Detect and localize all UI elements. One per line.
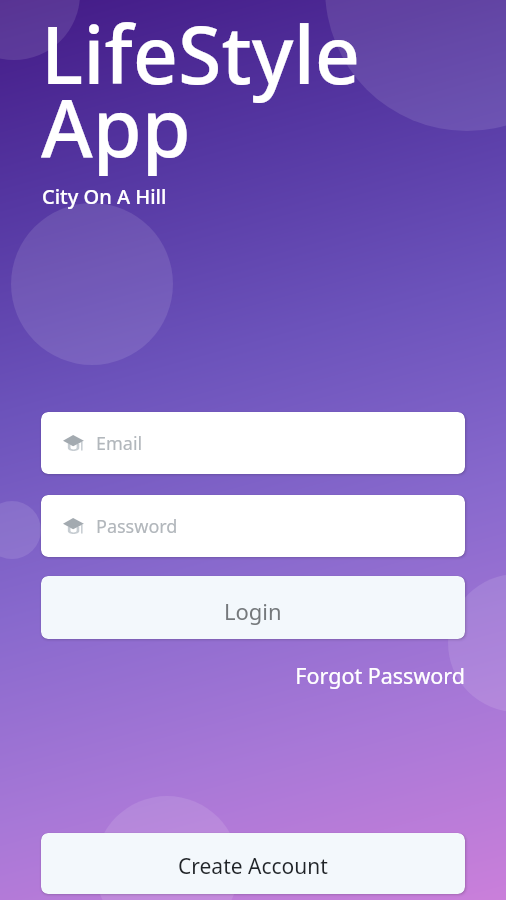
staticText: City On A Hill <box>42 183 167 210</box>
staticText: Password <box>96 514 178 539</box>
button[interactable]: Create Account <box>41 833 465 894</box>
button[interactable]: Password <box>41 495 465 557</box>
staticText: LifeStyle App <box>41 0 361 180</box>
staticText: Forgot Password <box>295 661 465 690</box>
button[interactable]: Email <box>41 412 465 474</box>
button[interactable]: Forgot Password <box>295 661 465 690</box>
staticText: Email <box>96 431 143 456</box>
staticText: Create Account <box>178 852 328 881</box>
button[interactable]: Login <box>41 576 465 639</box>
staticText: Login <box>224 596 282 626</box>
